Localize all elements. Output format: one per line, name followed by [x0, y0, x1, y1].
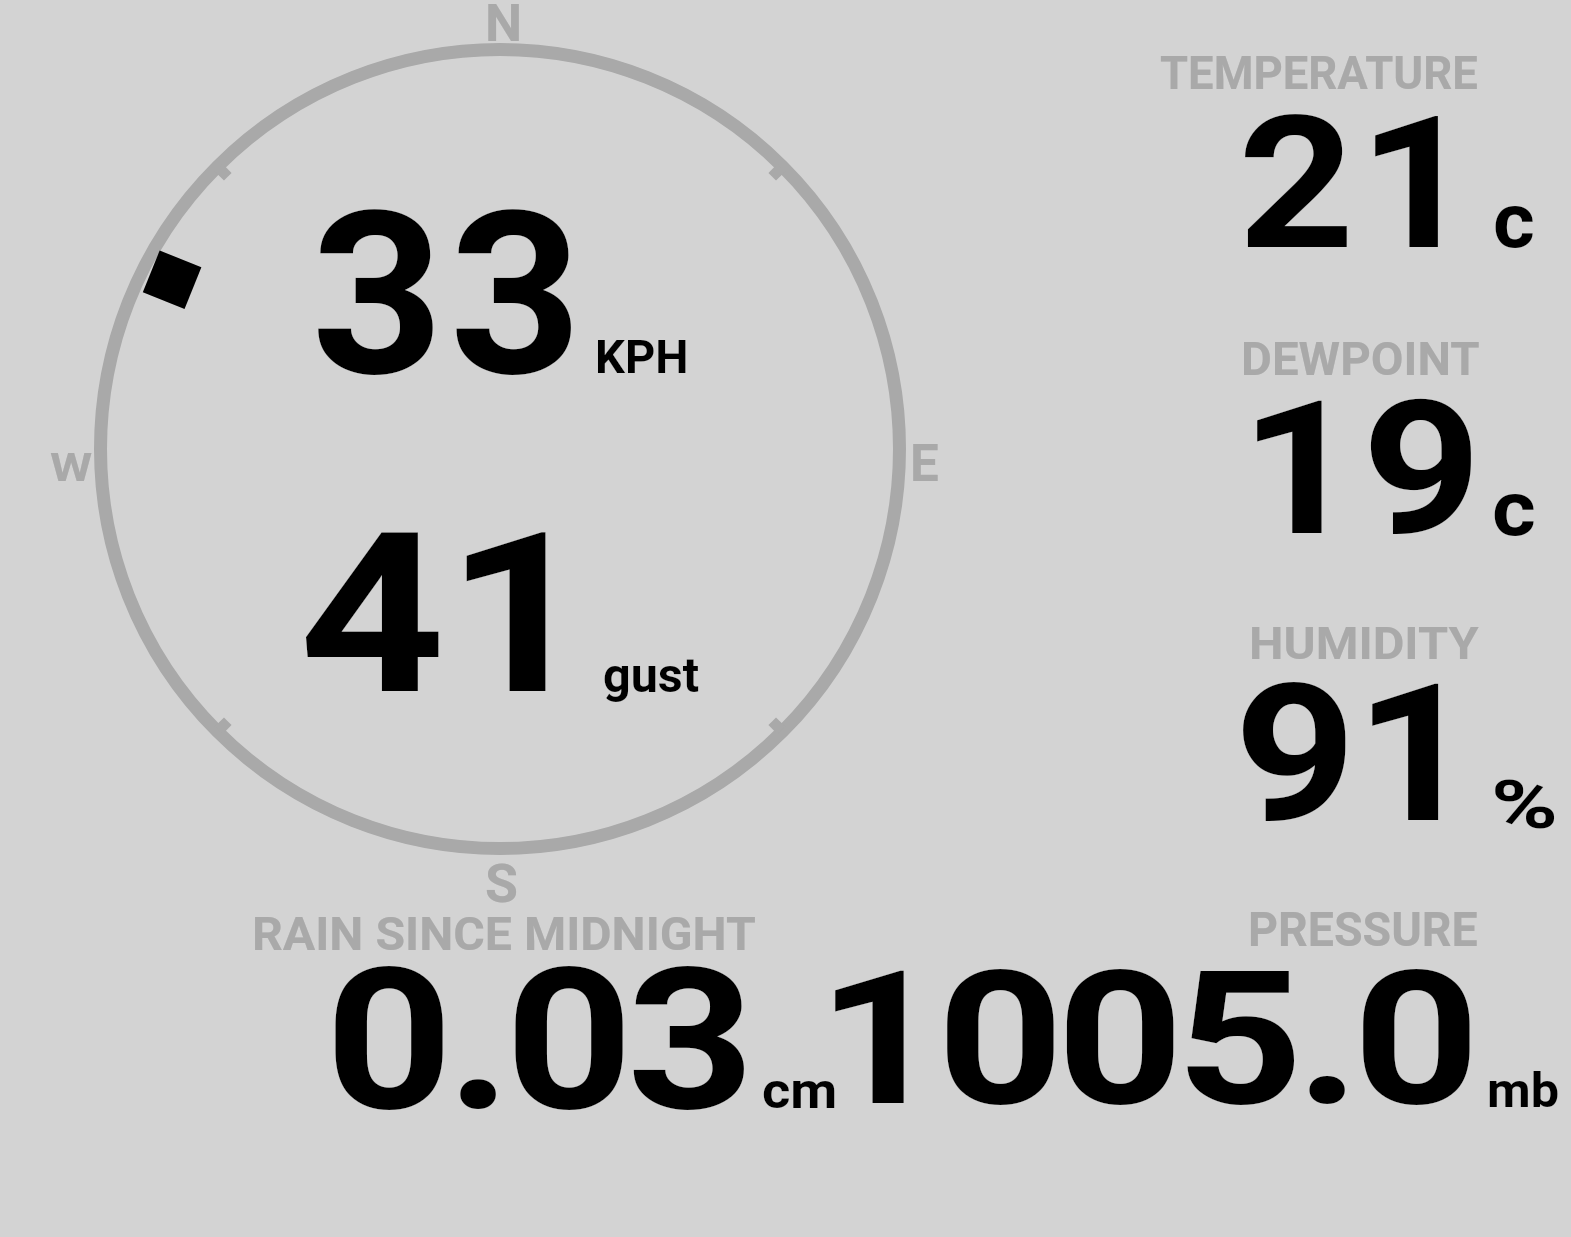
- staticText: 0.03: [325, 926, 749, 1156]
- staticText: 19: [1240, 360, 1484, 578]
- staticText: RAIN SINCE MIDNIGHT: [252, 907, 756, 962]
- staticText: 33: [311, 162, 588, 428]
- staticText: gust: [603, 647, 699, 704]
- staticText: PRESSURE: [1248, 902, 1478, 958]
- staticText: W: [50, 445, 93, 491]
- staticText: TEMPERATURE: [1160, 46, 1478, 101]
- staticText: S: [485, 852, 518, 915]
- staticText: %: [1491, 767, 1558, 844]
- staticText: 41: [299, 485, 593, 745]
- staticText: N: [485, 0, 522, 54]
- button[interactable]: Rain since midnight 0.03 cm: [250, 900, 850, 1115]
- button[interactable]: Wind 33 KPH gusting 41, direction west n…: [95, 45, 905, 855]
- button[interactable]: Pressure 1005.0 mb: [860, 900, 1560, 1115]
- button[interactable]: Temperature 21 C: [1150, 40, 1560, 265]
- button[interactable]: Humidity 91 percent: [1150, 608, 1560, 833]
- staticText: 21: [1238, 77, 1479, 292]
- staticText: c: [1492, 465, 1536, 553]
- staticText: c: [1493, 177, 1535, 265]
- staticText: 1005.0: [817, 930, 1473, 1148]
- staticText: DEWPOINT: [1241, 332, 1480, 387]
- staticText: cm: [762, 1062, 838, 1120]
- staticText: KPH: [595, 330, 689, 384]
- staticText: E: [910, 433, 939, 493]
- staticText: mb: [1487, 1062, 1559, 1119]
- button[interactable]: Dewpoint 19 C: [1150, 325, 1560, 550]
- staticText: 91: [1234, 643, 1476, 866]
- staticText: HUMIDITY: [1249, 617, 1479, 670]
